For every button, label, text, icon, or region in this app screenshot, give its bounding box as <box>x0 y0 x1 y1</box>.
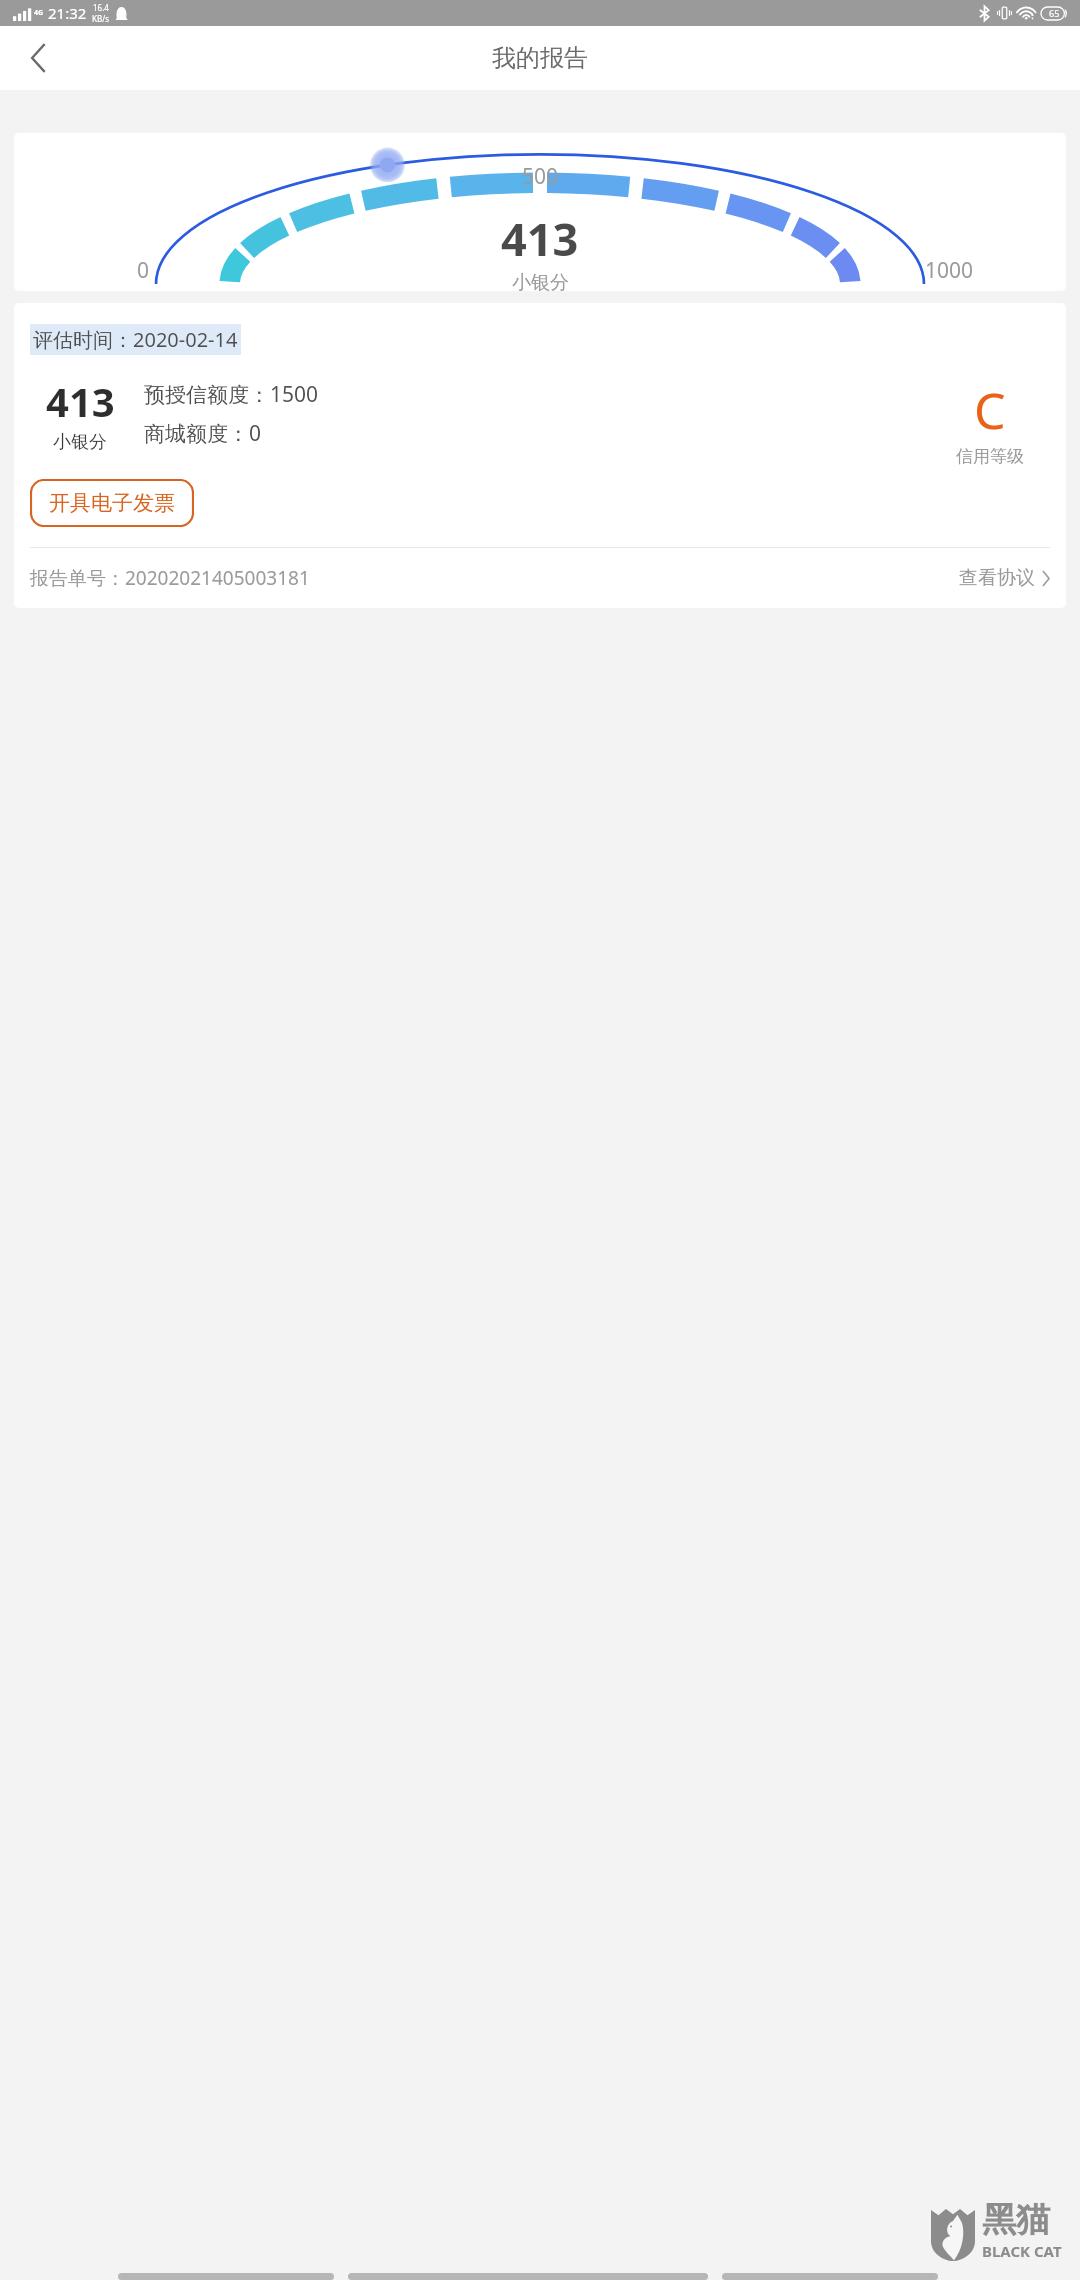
staticText: 查看协议 <box>959 566 1035 590</box>
staticText: 0 <box>137 256 150 285</box>
staticText: BLACK CAT <box>982 2241 1062 2261</box>
staticText: 小银分 <box>53 431 107 454</box>
staticText: 16.4 <box>93 2 109 13</box>
button[interactable]: Back <box>118 2273 334 2280</box>
staticText: C <box>974 376 1006 444</box>
staticText: 65 <box>1049 7 1060 19</box>
staticText: 21:32 <box>48 3 87 23</box>
staticText: 1000 <box>925 256 974 285</box>
button[interactable]: Home <box>348 2273 708 2280</box>
staticText: 评估时间：2020-02-14 <box>33 326 238 353</box>
staticText: 商城额度：0 <box>144 419 262 448</box>
staticText: 我的报告 <box>492 43 588 73</box>
staticText: 预授信额度：1500 <box>144 380 319 409</box>
staticText: 黑猫 <box>982 2198 1050 2241</box>
staticText: 4G <box>34 8 44 18</box>
staticText: 报告单号：20202021405003181 <box>30 565 310 591</box>
staticText: 413 <box>46 374 115 428</box>
staticText: 413 <box>501 208 579 269</box>
button[interactable]: 查看协议 <box>959 566 1050 590</box>
button[interactable]: Recents <box>722 2273 938 2280</box>
staticText: 信用等级 <box>956 446 1024 467</box>
button[interactable]: 开具电子发票 <box>30 479 194 527</box>
staticText: 开具电子发票 <box>49 490 175 516</box>
button[interactable]: 500 <box>14 133 1066 291</box>
button[interactable]: Back <box>14 34 62 82</box>
staticText: 500 <box>522 162 559 191</box>
staticText: 小银分 <box>512 271 569 291</box>
staticText: KB/s <box>92 13 109 24</box>
